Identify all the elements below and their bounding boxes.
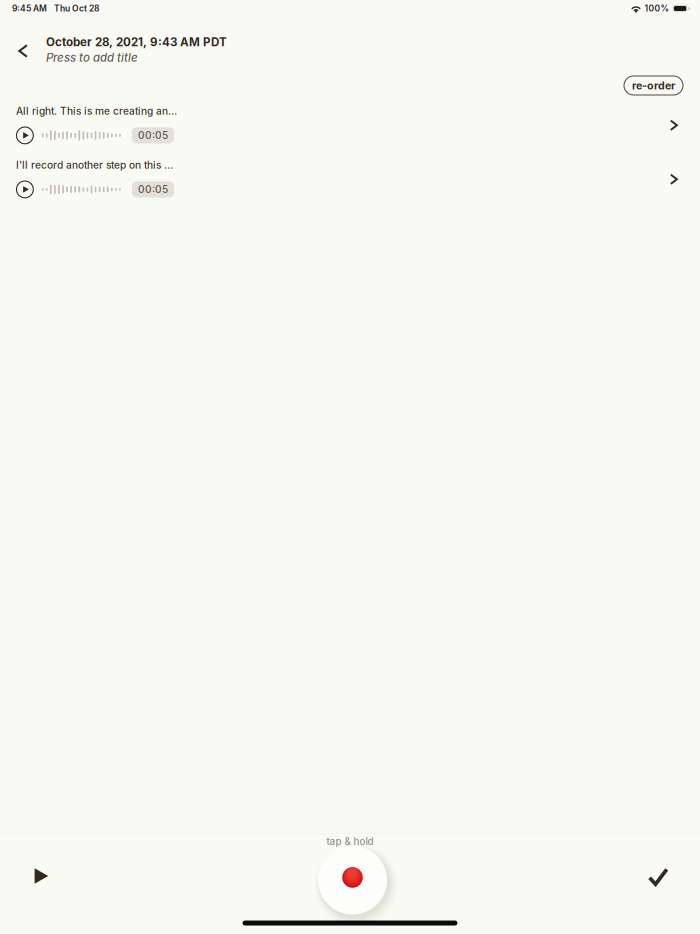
button[interactable]: Play all (18, 853, 64, 899)
staticText: Press to add title (46, 50, 138, 64)
button[interactable]: October 28, 2021, 9:43 AM PDT (46, 32, 227, 64)
staticText: I'll record another step on this … (16, 159, 173, 171)
button[interactable]: Back (5, 33, 41, 69)
button[interactable]: Done (635, 854, 681, 900)
staticText: 100% (645, 3, 670, 14)
staticText: Thu Oct 28 (54, 3, 99, 14)
staticText: 9:45 AM (12, 3, 47, 14)
button[interactable]: All right. This is me creating an… (0, 99, 700, 153)
staticText: 00:05 (138, 129, 168, 142)
staticText: tap & hold (326, 835, 373, 847)
staticText: All right. This is me creating an… (16, 105, 177, 117)
button[interactable]: Record (308, 836, 396, 924)
staticText: re-order (632, 79, 675, 92)
button[interactable]: re-order (624, 76, 683, 95)
staticText: 00:05 (138, 183, 168, 196)
button[interactable]: I'll record another step on this … (0, 153, 700, 207)
staticText: October 28, 2021, 9:43 AM PDT (46, 35, 227, 49)
